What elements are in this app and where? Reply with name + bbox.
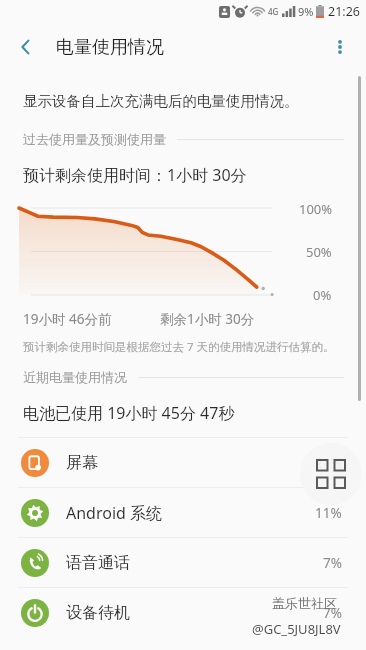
button[interactable]: App grid (300, 443, 362, 505)
staticText: 电量使用情况 (56, 36, 164, 59)
staticText: 电池已使用 19小时 45分 47秒 (23, 402, 235, 424)
staticText: 盖乐世社区 (272, 595, 337, 611)
staticText: 7% (323, 554, 342, 572)
staticText: 语音通话 (66, 553, 323, 573)
staticText: 设备待机 (66, 603, 323, 623)
staticText: 7% (323, 604, 342, 622)
button[interactable]: 屏幕 (0, 438, 366, 487)
staticText: 9% (298, 4, 314, 19)
button[interactable]: More options (318, 25, 362, 69)
staticText: @GC_5JU8JL8V (252, 620, 341, 638)
staticText: 近期电量使用情况 (23, 369, 127, 385)
staticText: 21% (315, 454, 342, 472)
button[interactable]: Android 系统 (0, 488, 366, 537)
button[interactable]: Back (4, 25, 48, 69)
staticText: 21:26 (328, 3, 360, 20)
staticText: 4G (268, 6, 279, 17)
button[interactable]: 语音通话 (0, 538, 366, 587)
button[interactable]: 设备待机 (0, 588, 366, 637)
staticText: 预计剩余使用时间：1小时 30分 (23, 164, 247, 186)
staticText: 过去使用量及预测使用量 (23, 131, 166, 147)
staticText: 屏幕 (66, 453, 315, 473)
staticText: 预计剩余使用时间是根据您过去 7 天的使用情况进行估算的。 (23, 339, 335, 355)
staticText: 显示设备自上次充满电后的电量使用情况。 (23, 92, 299, 110)
staticText: 19小时 46分前 (23, 310, 112, 328)
staticText: 11% (315, 504, 342, 522)
staticText: 100% (299, 200, 333, 218)
staticText: 0% (313, 286, 332, 304)
staticText: Android 系统 (66, 502, 315, 524)
staticText: 50% (306, 243, 332, 261)
staticText: 剩余1小时 30分 (160, 310, 255, 328)
